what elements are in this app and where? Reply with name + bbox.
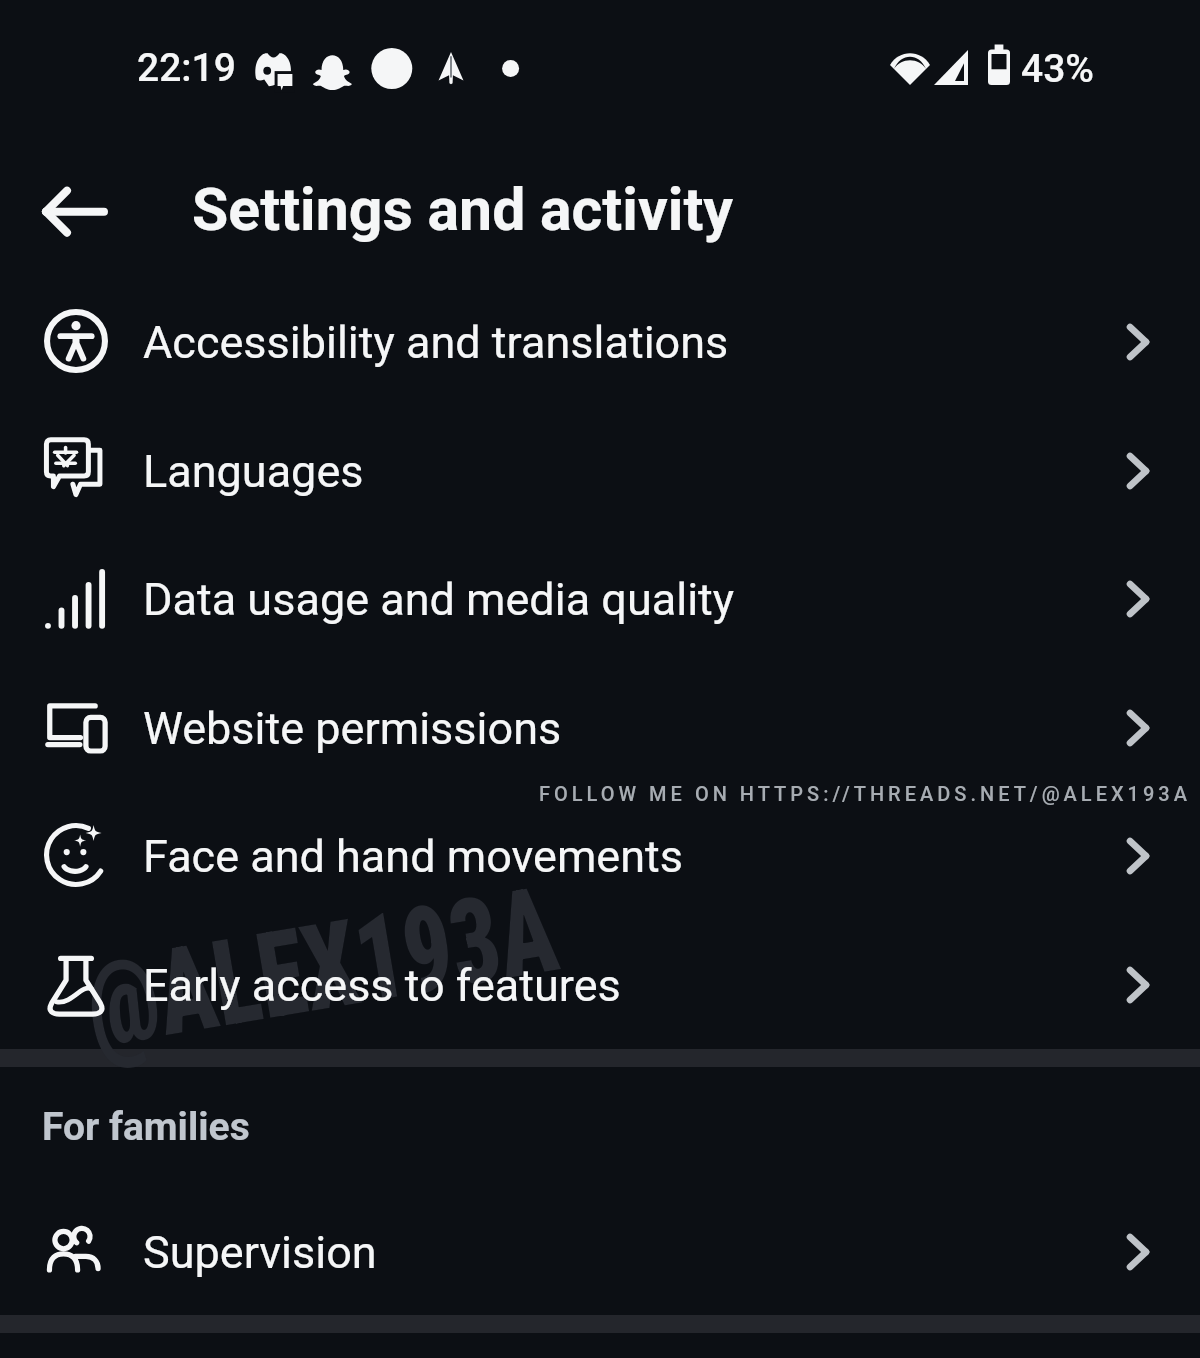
staticText: 22:19 [137,45,236,91]
staticText: Data usage and media quality [143,573,735,626]
staticText: Website permissions [143,702,562,755]
staticText: For families [42,1104,250,1150]
button[interactable]: Back [22,172,126,252]
button[interactable]: Languages [0,423,1200,551]
staticText: 43% [1021,46,1095,92]
button[interactable]: Accessibility and translations [0,294,1200,422]
staticText: Face and hand movements [143,830,683,883]
staticText: Settings and activity [192,175,734,244]
button[interactable]: Data usage and media quality [0,551,1200,679]
staticText: Accessibility and translations [143,316,729,369]
button[interactable]: Supervision [0,1204,1200,1332]
staticText: FOLLOW ME ON HTTPS://THREADS.NET/@ALEX19… [539,782,1191,805]
button[interactable]: Early access to features [0,937,1200,1065]
button[interactable]: Face and hand movements [0,808,1200,936]
staticText: @ALEX193A [76,860,566,1076]
staticText: Languages [143,445,364,498]
button[interactable]: Website permissions [0,680,1200,808]
staticText: Supervision [143,1226,377,1279]
staticText: Early access to features [143,959,621,1012]
